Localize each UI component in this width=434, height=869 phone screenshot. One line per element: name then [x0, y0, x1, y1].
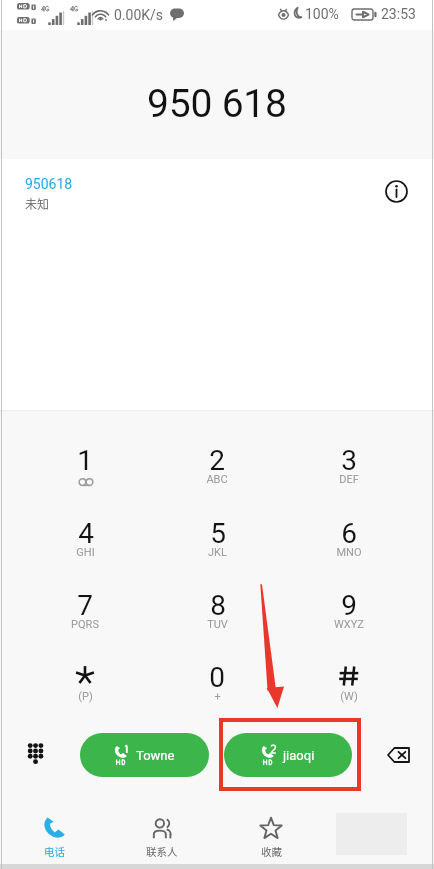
staticText: 950618	[25, 176, 73, 192]
button[interactable]: 电话	[0, 806, 108, 864]
button[interactable]: 9	[283, 589, 415, 661]
staticText: 8	[210, 589, 226, 622]
button[interactable]: (P)	[19, 661, 151, 733]
button[interactable]: 联系人	[108, 806, 216, 864]
button[interactable]: 0	[151, 661, 283, 733]
staticText: TUV	[207, 618, 228, 631]
staticText: 未知	[25, 195, 50, 212]
button[interactable]: Delete	[381, 738, 415, 772]
staticText: 电话	[44, 844, 65, 859]
staticText: 5	[210, 517, 226, 550]
button[interactable]: (W)	[283, 661, 415, 733]
staticText: jiaoqi	[283, 748, 315, 763]
staticText: 1	[77, 444, 93, 477]
staticText: 100%	[305, 6, 339, 22]
staticText: PQRS	[71, 618, 99, 631]
staticText: 收藏	[261, 844, 282, 859]
button[interactable]: 7	[19, 589, 151, 661]
staticText: 0.00K/s	[114, 7, 164, 23]
button[interactable]: jiaoqi	[224, 733, 352, 777]
button[interactable]: 6	[283, 517, 415, 589]
staticText: +	[214, 690, 221, 703]
staticText: 0	[209, 661, 225, 694]
button[interactable]: Contact details	[381, 176, 411, 206]
staticText: 950 618	[147, 81, 287, 127]
button[interactable]: 2	[151, 444, 283, 517]
staticText: 7	[77, 589, 93, 622]
button[interactable]: 950618	[0, 159, 434, 221]
button[interactable]: 3	[283, 444, 415, 517]
button[interactable]: 收藏	[216, 806, 325, 864]
staticText: WXYZ	[334, 618, 364, 631]
button[interactable]: 4	[19, 517, 151, 589]
staticText: 2	[209, 444, 225, 477]
staticText: 3	[341, 444, 357, 477]
staticText: 4	[78, 517, 94, 550]
staticText: (P)	[78, 690, 93, 703]
staticText: 6	[341, 517, 357, 550]
staticText: ABC	[206, 473, 228, 486]
button[interactable]: Towne	[80, 733, 209, 777]
staticText: 9	[341, 589, 357, 622]
button[interactable]: 5	[151, 517, 283, 589]
button[interactable]: Keypad	[18, 739, 52, 773]
button[interactable]: 1	[19, 444, 151, 517]
button[interactable]: 8	[151, 589, 283, 661]
staticText: (W)	[340, 690, 358, 703]
staticText: DEF	[339, 473, 359, 486]
staticText: Towne	[136, 748, 175, 763]
staticText: JKL	[208, 546, 227, 559]
staticText: 联系人	[146, 844, 178, 859]
staticText: MNO	[336, 546, 362, 559]
staticText: GHI	[76, 546, 95, 559]
staticText: 23:53	[381, 6, 416, 22]
